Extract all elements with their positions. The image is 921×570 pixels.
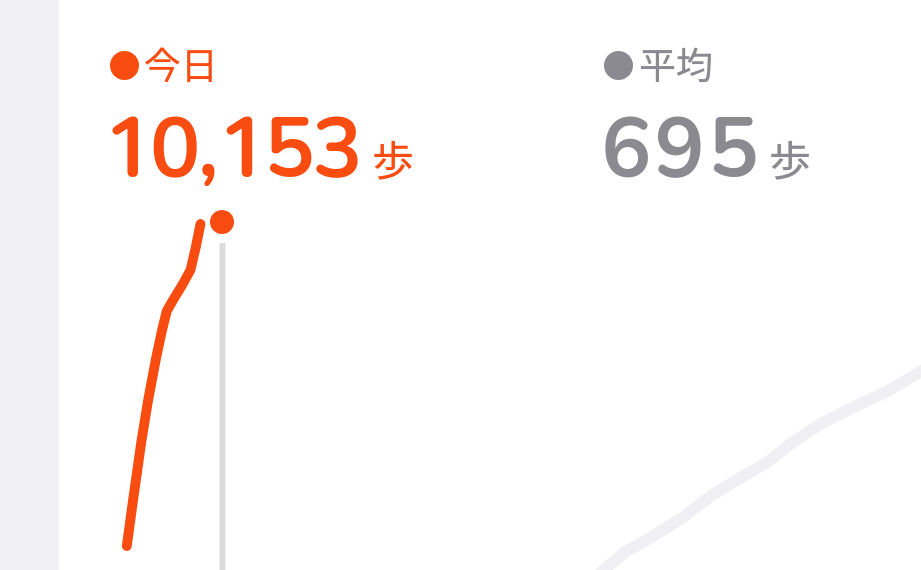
button[interactable]: Step count chart — [0, 0, 921, 570]
other: Step count chart — [0, 0, 921, 570]
staticText: 695 — [601, 95, 762, 194]
staticText: 今日 — [144, 36, 218, 90]
staticText: 歩 — [769, 127, 812, 188]
staticText: 平均 — [639, 36, 713, 90]
staticText: 歩 — [372, 127, 415, 188]
staticText: 10,153 — [102, 95, 361, 194]
